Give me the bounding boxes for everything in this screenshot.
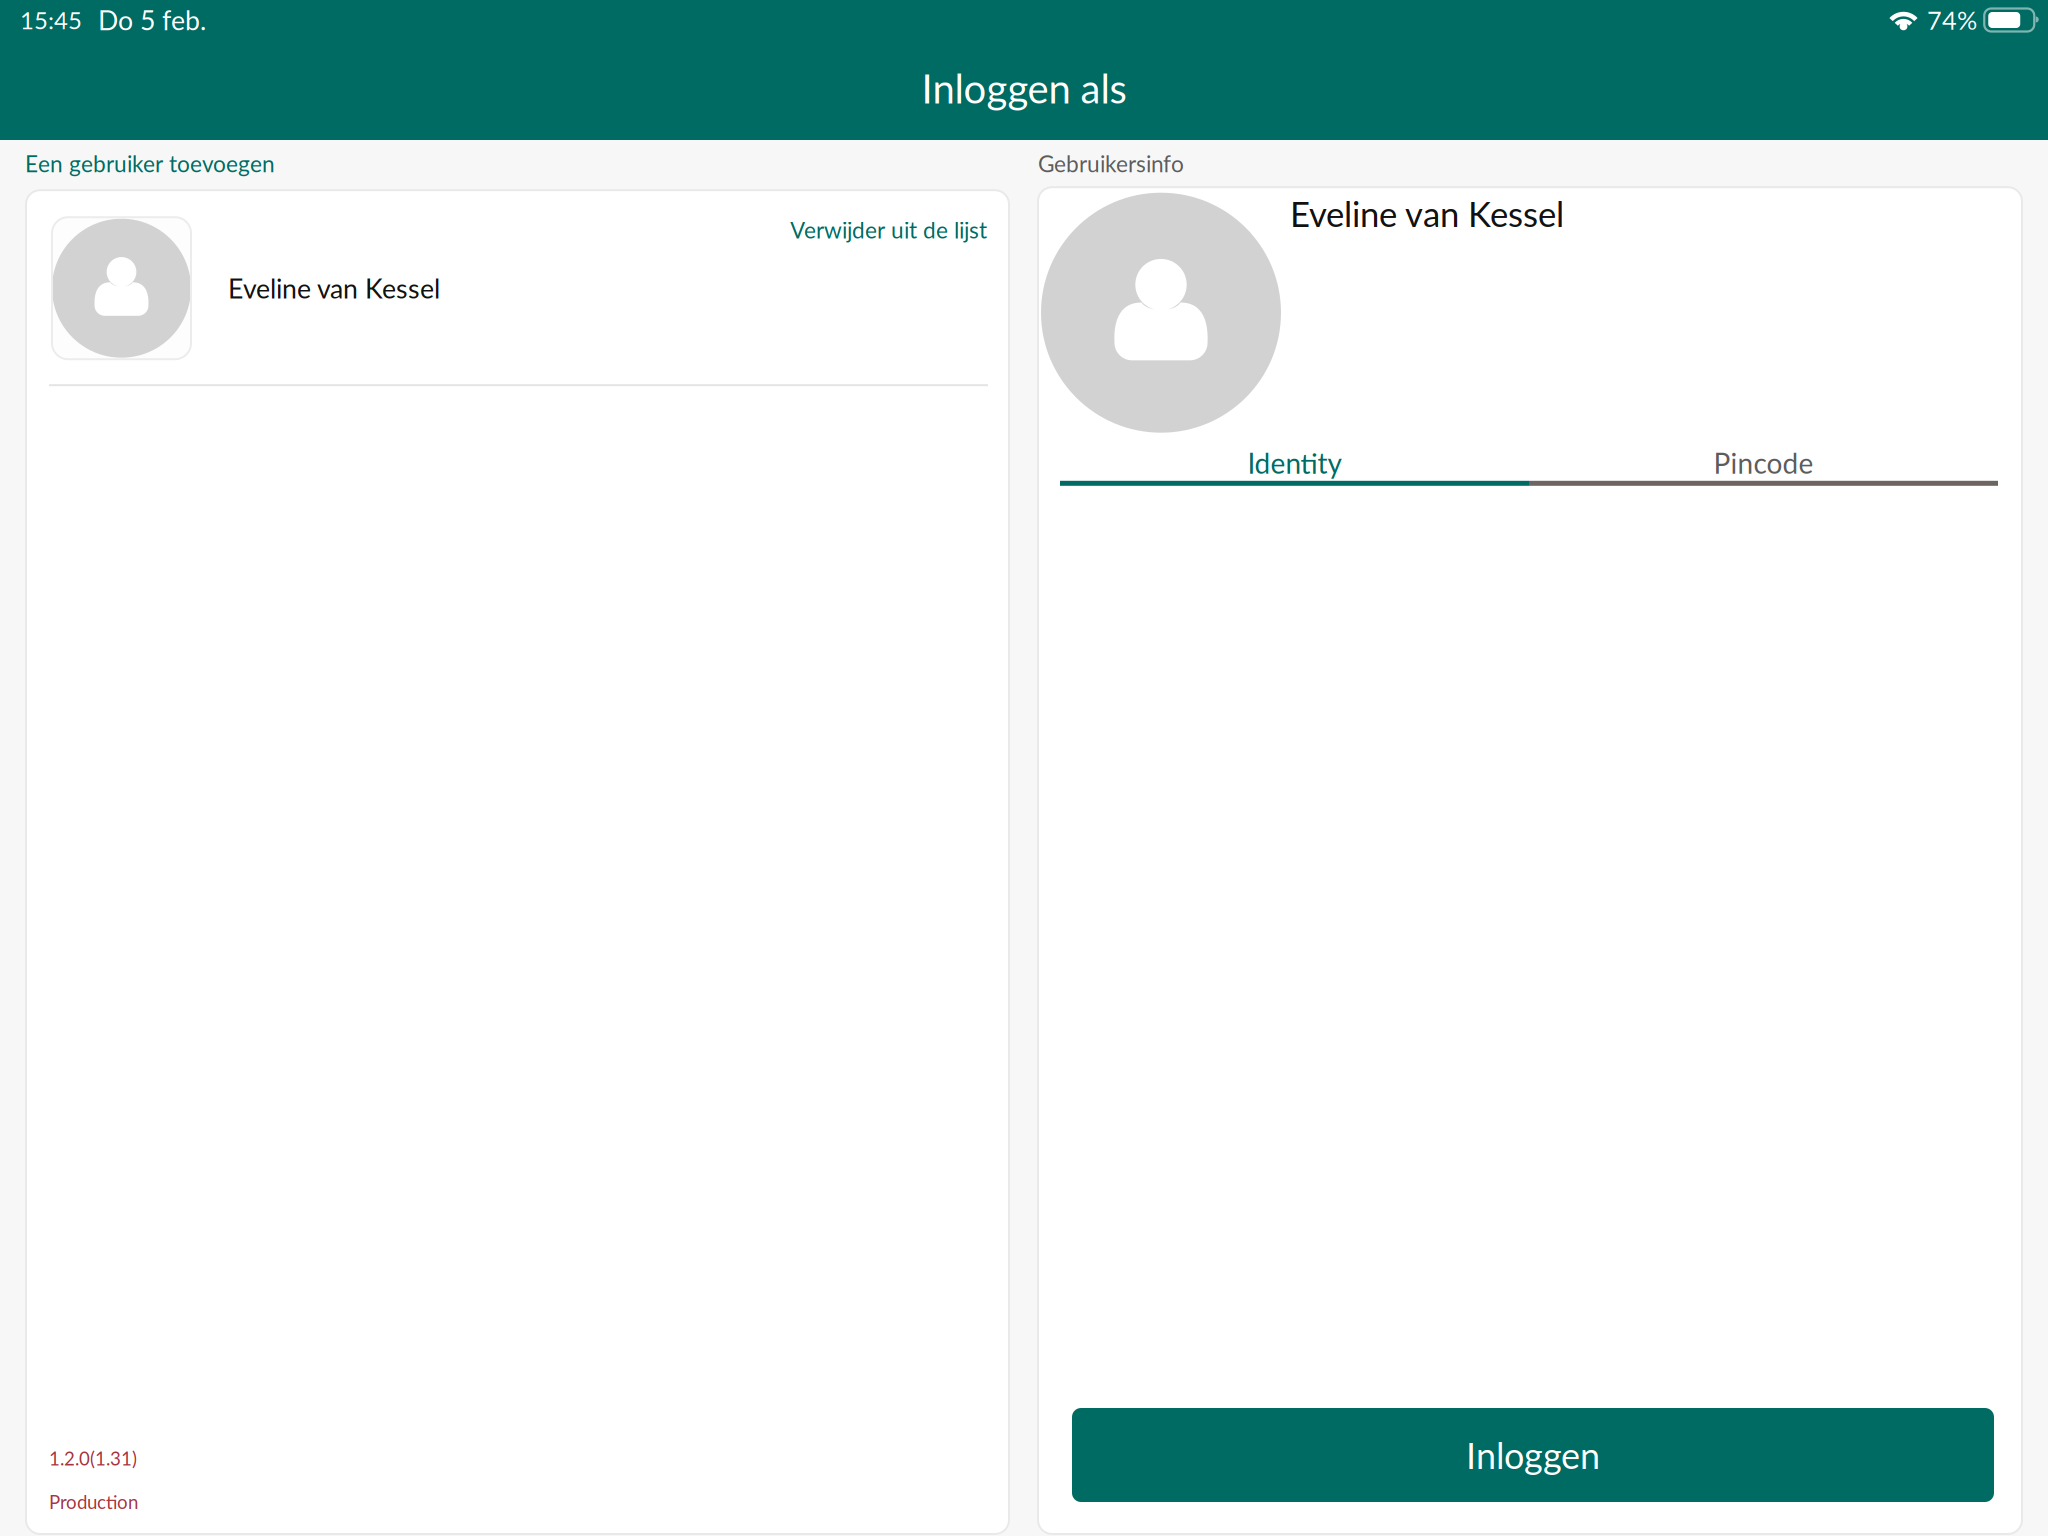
staticText: Identity	[1247, 446, 1341, 480]
staticText: Inloggen als	[921, 64, 1126, 112]
staticText: Gebruikersinfo	[1038, 150, 1184, 177]
button[interactable]: Een gebruiker toevoegen	[0, 140, 1009, 190]
staticText: Een gebruiker toevoegen	[25, 150, 275, 177]
button[interactable]: Verwijder uit de lijst	[776, 190, 1009, 257]
staticText: Eveline van Kessel	[1290, 193, 1564, 234]
button[interactable]: Eveline van Kessel	[26, 190, 1009, 384]
button[interactable]: Identity	[1060, 436, 1529, 481]
staticText: 1.2.0(1.31)	[49, 1447, 137, 1470]
staticText: Inloggen	[1466, 1433, 1600, 1477]
staticText: Verwijder uit de lijst	[790, 216, 987, 243]
button[interactable]: Pincode	[1529, 436, 1998, 481]
staticText: Eveline van Kessel	[228, 272, 440, 304]
staticText: Do 5 feb.	[98, 4, 206, 36]
staticText: Pincode	[1713, 446, 1813, 480]
staticText: 15:45	[20, 6, 82, 34]
staticText: Production	[49, 1491, 138, 1513]
staticText: 74%	[1927, 5, 1977, 35]
button[interactable]: Inloggen	[1072, 1408, 1994, 1502]
